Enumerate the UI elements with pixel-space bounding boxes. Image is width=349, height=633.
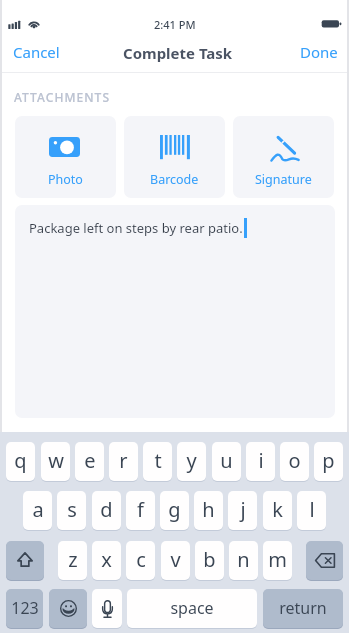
staticText: Photo [48, 171, 83, 188]
staticText: ATTACHMENTS [14, 89, 111, 105]
staticText: l [309, 496, 315, 523]
staticText: Cancel [13, 42, 60, 62]
staticText: k [272, 496, 283, 523]
staticText: c [136, 546, 146, 573]
staticText: 123 [11, 597, 39, 619]
button[interactable]: e [75, 442, 104, 481]
staticText: e [84, 447, 96, 474]
button[interactable]: Cancel [0, 38, 72, 68]
staticText: r [119, 447, 128, 474]
button[interactable]: 123 [6, 589, 43, 628]
button[interactable]: y [177, 442, 206, 481]
button[interactable]: v [161, 541, 190, 580]
staticText: m [268, 546, 287, 573]
button[interactable]: a [23, 491, 52, 530]
button[interactable]: Emoji [49, 589, 87, 628]
button[interactable]: f [126, 491, 155, 530]
staticText: d [100, 496, 113, 523]
button[interactable]: d [92, 491, 121, 530]
staticText: q [14, 447, 27, 474]
staticText: v [170, 546, 181, 573]
button[interactable]: Backspace [306, 541, 343, 580]
button[interactable]: i [246, 442, 275, 481]
staticText: h [202, 496, 215, 523]
button[interactable]: m [263, 541, 292, 580]
button[interactable]: Signature [233, 116, 334, 198]
staticText: o [288, 447, 301, 474]
staticText: j [240, 496, 246, 523]
button[interactable]: Done [288, 38, 349, 68]
staticText: s [67, 496, 77, 523]
staticText: n [237, 546, 250, 573]
button[interactable]: n [229, 541, 258, 580]
button[interactable]: t [143, 442, 172, 481]
button[interactable]: l [297, 491, 326, 530]
button[interactable]: z [58, 541, 87, 580]
staticText: Done [300, 42, 338, 62]
button[interactable]: Dictation [92, 589, 122, 628]
staticText: a [32, 496, 44, 523]
button[interactable]: w [41, 442, 70, 481]
staticText: Barcode [150, 171, 199, 188]
button[interactable]: g [160, 491, 189, 530]
staticText: u [220, 447, 233, 474]
button[interactable]: h [194, 491, 223, 530]
staticText: g [168, 496, 181, 523]
staticText: return [279, 597, 327, 619]
staticText: x [101, 546, 112, 573]
button[interactable]: b [195, 541, 224, 580]
staticText: y [186, 447, 197, 474]
button[interactable]: s [57, 491, 86, 530]
button[interactable]: space [127, 589, 257, 628]
staticText: z [68, 546, 78, 573]
button[interactable]: j [228, 491, 257, 530]
button[interactable]: p [314, 442, 343, 481]
button[interactable]: q [6, 442, 35, 481]
button[interactable]: o [280, 442, 309, 481]
button[interactable]: Barcode [124, 116, 225, 198]
button[interactable]: Photo [15, 116, 116, 198]
button[interactable]: Package left on steps by rear patio. [15, 205, 335, 418]
staticText: f [137, 496, 144, 523]
button[interactable]: k [263, 491, 292, 530]
staticText: 2:41 PM [154, 17, 196, 32]
staticText: space [170, 597, 214, 619]
button[interactable]: Shift [6, 541, 44, 580]
button[interactable]: x [92, 541, 121, 580]
staticText: Package left on steps by rear patio. [29, 219, 243, 237]
staticText: Complete Task [123, 43, 233, 63]
staticText: i [258, 447, 264, 474]
staticText: p [322, 447, 335, 474]
button[interactable]: return [263, 589, 343, 628]
button[interactable]: u [212, 442, 241, 481]
staticText: w [48, 447, 64, 474]
staticText: b [203, 546, 216, 573]
staticText: Signature [255, 171, 312, 188]
button[interactable]: r [109, 442, 138, 481]
staticText: t [154, 447, 162, 474]
button[interactable]: c [126, 541, 155, 580]
